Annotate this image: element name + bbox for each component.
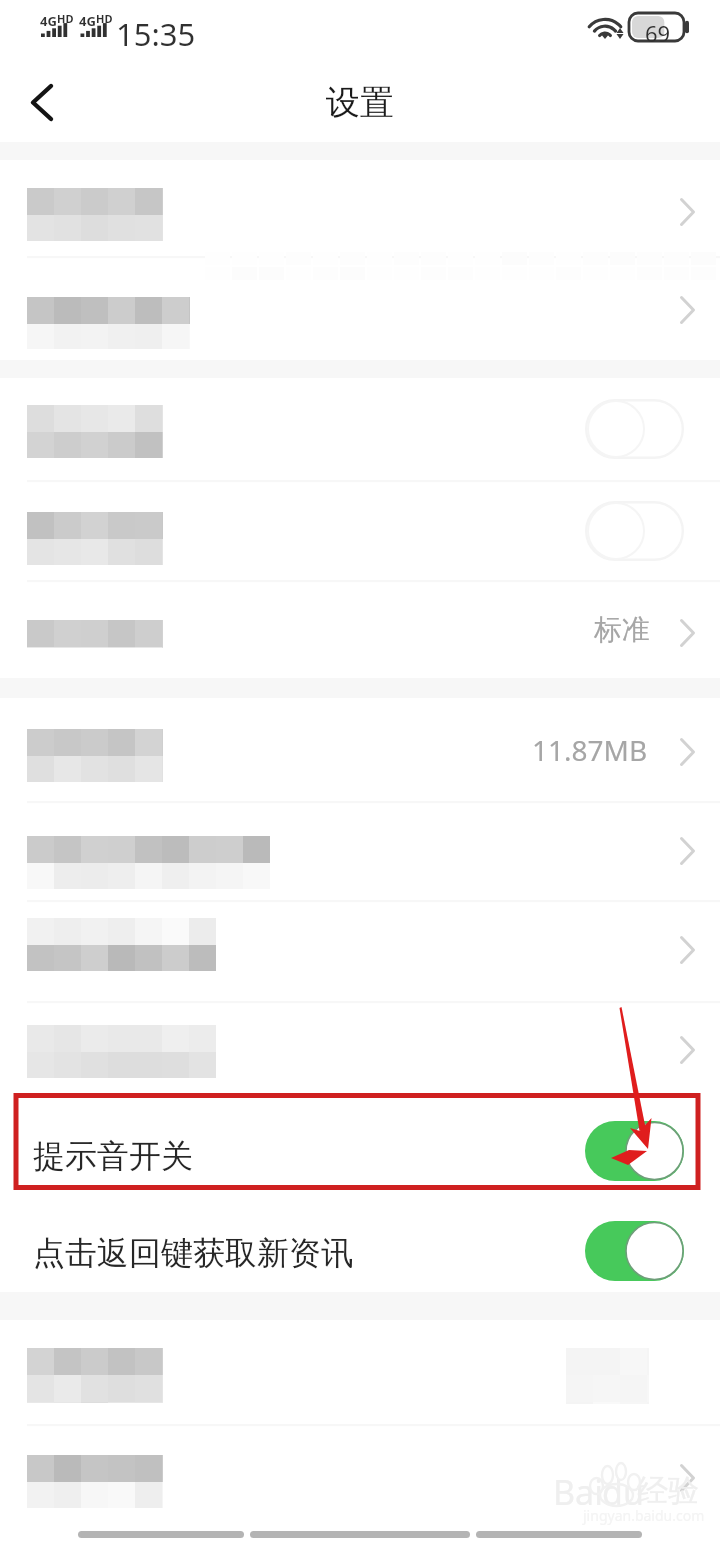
button[interactable]: Toggle xyxy=(585,399,684,459)
button[interactable]: 11.87MB xyxy=(0,698,720,801)
button[interactable]: Toggle xyxy=(585,1221,684,1281)
button[interactable] xyxy=(0,1002,720,1095)
staticText: 提示音开关 xyxy=(33,1136,193,1176)
button[interactable]: 点击返回键获取新资讯 xyxy=(0,1199,720,1292)
button[interactable] xyxy=(0,1425,720,1525)
button[interactable]: 提示音开关 xyxy=(0,1093,720,1198)
staticText: du xyxy=(602,1469,644,1515)
staticText: 4G xyxy=(79,12,96,30)
button[interactable]: Toggle xyxy=(0,481,720,580)
staticText: 标准 xyxy=(594,612,650,647)
staticText: jingyan.baidu.com xyxy=(583,1506,705,1525)
button[interactable] xyxy=(0,901,720,1001)
button[interactable]: 标准 xyxy=(0,581,720,678)
staticText: 69 xyxy=(645,18,671,48)
button[interactable] xyxy=(0,257,720,360)
button[interactable]: Toggle xyxy=(0,378,720,480)
button[interactable]: Back xyxy=(0,62,82,142)
staticText: 设置 xyxy=(326,81,394,124)
button[interactable]: Toggle xyxy=(585,1121,684,1181)
staticText: 15:35 xyxy=(116,13,196,55)
staticText: Bai xyxy=(553,1469,603,1515)
staticText: HD xyxy=(57,11,74,26)
staticText: 经验 xyxy=(637,1471,699,1510)
staticText: 11.87MB xyxy=(532,731,648,769)
staticText: 点击返回键获取新资讯 xyxy=(33,1233,353,1273)
button[interactable]: Toggle xyxy=(585,501,684,561)
button[interactable] xyxy=(0,802,720,900)
staticText: 4G xyxy=(40,12,57,30)
button[interactable] xyxy=(0,160,720,256)
staticText: HD xyxy=(96,11,113,26)
button[interactable] xyxy=(0,1320,720,1424)
